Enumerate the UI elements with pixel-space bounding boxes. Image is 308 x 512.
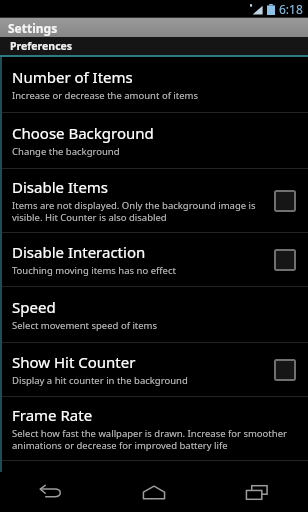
staticText: Preferences	[10, 39, 73, 53]
button[interactable]: Speed	[0, 287, 308, 342]
button[interactable]: Home	[102, 472, 205, 512]
staticText: Frame Rate	[12, 405, 93, 425]
staticText: Number of Items	[12, 67, 133, 87]
staticText: Select movement speed of items	[12, 319, 158, 332]
staticText: Items are not displayed. Only the backgr…	[12, 199, 263, 224]
button[interactable]: Back	[0, 472, 102, 512]
button[interactable]: Recent apps	[205, 472, 308, 512]
button[interactable]: Disable Items	[0, 169, 308, 232]
button[interactable]: Direction	[0, 461, 308, 472]
staticText: 6:18	[279, 1, 303, 17]
button[interactable]: Toggle Show Hit Counter	[271, 356, 299, 384]
staticText: Disable Interaction	[12, 242, 146, 262]
button[interactable]: Toggle Disable Items	[271, 187, 299, 215]
staticText: Disable Items	[12, 177, 109, 197]
staticText: Touching moving items has no effect	[12, 264, 176, 277]
staticText: Settings	[8, 20, 58, 36]
staticText: Choose Background	[12, 123, 154, 143]
button[interactable]: Frame Rate	[0, 397, 308, 460]
button[interactable]: Choose Background	[0, 113, 308, 168]
button[interactable]: Disable Interaction	[0, 233, 308, 286]
staticText: Speed	[12, 297, 56, 317]
button[interactable]: Number of Items	[0, 57, 308, 112]
button[interactable]: Toggle Disable Interaction	[271, 246, 299, 274]
staticText: Display a hit counter in the background	[12, 374, 188, 387]
staticText: Select how fast the wallpaper is drawn. …	[12, 427, 299, 452]
button[interactable]: Show Hit Counter	[0, 343, 308, 396]
staticText: Increase or decrease the amount of items	[12, 89, 199, 102]
staticText: Change the background	[12, 145, 120, 158]
staticText: Show Hit Counter	[12, 352, 136, 372]
